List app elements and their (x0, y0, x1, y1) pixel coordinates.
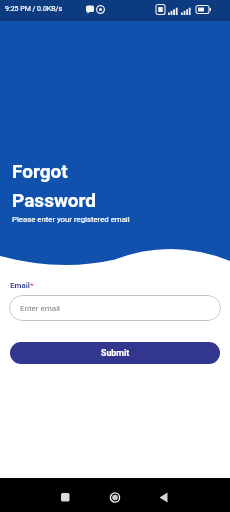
button[interactable]: Submit (10, 342, 220, 364)
staticText: Please enter your registered email (12, 215, 130, 224)
staticText: Submit (101, 348, 130, 358)
staticText: Password (12, 189, 97, 211)
staticText: Forgot (12, 160, 68, 182)
staticText: Email (10, 281, 30, 290)
button[interactable] (103, 485, 127, 509)
staticText: Enter email (20, 304, 61, 313)
button[interactable] (151, 485, 175, 509)
staticText: * (30, 281, 34, 290)
staticText: 9:25 PM / 0.0KB/s (5, 5, 63, 13)
button[interactable]: Enter email (9, 295, 221, 321)
button[interactable] (53, 485, 77, 509)
